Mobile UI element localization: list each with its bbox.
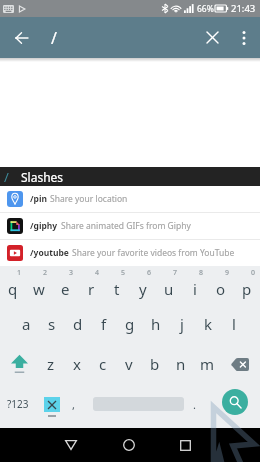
- button[interactable]: b: [142, 344, 168, 384]
- button[interactable]: a: [13, 304, 39, 344]
- staticText: t: [114, 279, 120, 299]
- staticText: j: [180, 314, 184, 334]
- button[interactable]: v: [116, 344, 142, 384]
- staticText: y: [139, 279, 147, 299]
- staticText: Slashes: [21, 169, 64, 185]
- staticText: 9: [225, 268, 230, 278]
- button[interactable]: ,: [68, 384, 79, 428]
- button[interactable]: 6: [130, 266, 156, 304]
- button[interactable]: 3: [52, 266, 78, 304]
- staticText: n: [176, 354, 186, 374]
- staticText: /: [51, 27, 57, 49]
- staticText: z: [47, 354, 55, 374]
- staticText: c: [99, 354, 107, 374]
- button[interactable]: d: [65, 304, 91, 344]
- staticText: Share animated GIFs from Giphy: [61, 220, 191, 232]
- staticText: i: [193, 279, 197, 299]
- staticText: /pin: [30, 193, 47, 205]
- staticText: ?123: [7, 397, 29, 411]
- staticText: r: [88, 279, 95, 299]
- staticText: /giphy: [30, 220, 58, 232]
- button[interactable]: /giphy: [0, 213, 260, 239]
- staticText: a: [22, 314, 31, 334]
- button[interactable]: m: [194, 344, 220, 384]
- staticText: 6: [147, 268, 152, 278]
- staticText: m: [200, 354, 215, 374]
- staticText: w: [33, 279, 45, 299]
- staticText: /: [4, 168, 9, 186]
- staticText: q: [8, 279, 18, 299]
- staticText: 1: [17, 268, 22, 278]
- staticText: h: [151, 314, 161, 334]
- staticText: b: [150, 354, 160, 374]
- staticText: s: [48, 314, 56, 334]
- staticText: 0: [251, 268, 256, 278]
- staticText: f: [101, 314, 107, 334]
- button[interactable]: Space: [83, 384, 194, 428]
- button[interactable]: Recents: [163, 428, 207, 462]
- staticText: 4: [95, 268, 100, 278]
- button[interactable]: Search: [206, 384, 260, 428]
- button[interactable]: ?123: [0, 384, 36, 428]
- button[interactable]: f: [91, 304, 117, 344]
- button[interactable]: Back: [0, 17, 42, 58]
- staticText: l: [232, 314, 236, 334]
- staticText: p: [242, 279, 252, 299]
- staticText: 3: [69, 268, 74, 278]
- staticText: .: [193, 397, 196, 412]
- staticText: u: [164, 279, 174, 299]
- staticText: o: [216, 279, 226, 299]
- staticText: ,: [72, 397, 75, 412]
- button[interactable]: 8: [182, 266, 208, 304]
- staticText: x: [73, 354, 81, 374]
- button[interactable]: j: [169, 304, 195, 344]
- staticText: 5: [121, 268, 126, 278]
- button[interactable]: l: [221, 304, 247, 344]
- button[interactable]: 0: [234, 266, 260, 304]
- staticText: k: [204, 314, 213, 334]
- staticText: v: [125, 354, 133, 374]
- staticText: d: [73, 314, 83, 334]
- button[interactable]: More options: [230, 17, 258, 58]
- staticText: 66%: [197, 3, 214, 15]
- button[interactable]: Close: [194, 17, 230, 58]
- staticText: g: [125, 314, 135, 334]
- button[interactable]: .: [188, 384, 200, 428]
- button[interactable]: c: [90, 344, 116, 384]
- staticText: 2: [43, 268, 48, 278]
- button[interactable]: /youtube: [0, 240, 260, 266]
- button[interactable]: z: [38, 344, 64, 384]
- button[interactable]: 1: [0, 266, 26, 304]
- button[interactable]: k: [195, 304, 221, 344]
- button[interactable]: Backspace: [220, 344, 260, 384]
- staticText: Share your favorite videos from YouTube: [72, 247, 235, 259]
- button[interactable]: Shift: [0, 344, 38, 384]
- staticText: e: [61, 279, 70, 299]
- button[interactable]: Switch keyboard: [36, 384, 68, 428]
- staticText: /youtube: [30, 247, 69, 259]
- staticText: 8: [199, 268, 204, 278]
- button[interactable]: n: [168, 344, 194, 384]
- button[interactable]: h: [143, 304, 169, 344]
- staticText: 7: [173, 268, 178, 278]
- staticText: Share your location: [50, 193, 128, 205]
- button[interactable]: /pin: [0, 186, 260, 212]
- button[interactable]: Back: [49, 428, 93, 462]
- button[interactable]: s: [39, 304, 65, 344]
- button[interactable]: 4: [78, 266, 104, 304]
- button[interactable]: 2: [26, 266, 52, 304]
- button[interactable]: x: [64, 344, 90, 384]
- staticText: 21:43: [231, 2, 256, 15]
- button[interactable]: 5: [104, 266, 130, 304]
- button[interactable]: Home: [107, 428, 151, 462]
- button[interactable]: 9: [208, 266, 234, 304]
- button[interactable]: g: [117, 304, 143, 344]
- button[interactable]: 7: [156, 266, 182, 304]
